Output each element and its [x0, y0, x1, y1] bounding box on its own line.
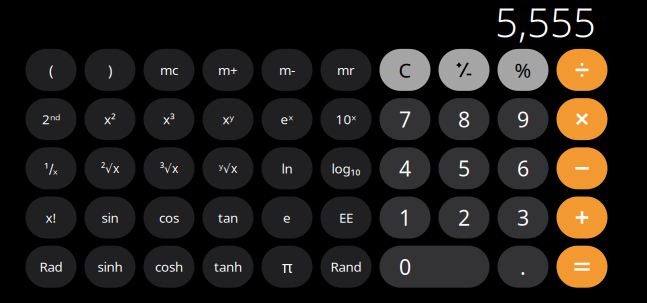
- button[interactable]: m+: [202, 49, 253, 91]
- staticText: mr: [337, 61, 355, 79]
- button[interactable]: sin: [84, 196, 135, 238]
- button[interactable]: EE: [320, 196, 371, 238]
- button[interactable]: Pi: [261, 246, 312, 288]
- button[interactable]: Rad: [25, 246, 76, 288]
- staticText: tan: [218, 209, 238, 226]
- staticText: Rad: [39, 258, 62, 275]
- staticText: 6: [517, 154, 529, 182]
- button[interactable]: Close parenthesis: [84, 49, 135, 91]
- staticText: 5: [458, 154, 470, 182]
- button[interactable]: e to the x: [261, 98, 312, 140]
- button[interactable]: 4: [379, 147, 430, 189]
- button[interactable]: x cubed: [143, 98, 194, 140]
- button[interactable]: 5: [438, 147, 489, 189]
- staticText: ʸ√x: [219, 160, 237, 176]
- staticText: sinh: [97, 258, 122, 275]
- button[interactable]: Plus minus: [438, 49, 489, 91]
- button[interactable]: sinh: [84, 246, 135, 288]
- button[interactable]: Decimal point: [497, 246, 548, 288]
- button[interactable]: tan: [202, 196, 253, 238]
- button[interactable]: Square root: [84, 147, 135, 189]
- staticText: 4: [399, 154, 411, 182]
- staticText: 7: [399, 105, 411, 133]
- button[interactable]: 8: [438, 98, 489, 140]
- button[interactable]: cos: [143, 196, 194, 238]
- button[interactable]: Cube root: [143, 147, 194, 189]
- staticText: 9: [517, 105, 529, 133]
- staticText: C: [398, 57, 411, 83]
- staticText: 2: [458, 203, 470, 232]
- button[interactable]: m-: [261, 49, 312, 91]
- staticText: cos: [159, 209, 179, 226]
- button[interactable]: 2: [438, 196, 489, 238]
- button[interactable]: 0: [379, 246, 489, 288]
- button[interactable]: x squared: [84, 98, 135, 140]
- button[interactable]: Rand: [320, 246, 371, 288]
- button[interactable]: mc: [143, 49, 194, 91]
- button[interactable]: 6: [497, 147, 548, 189]
- staticText: (: [49, 60, 53, 80]
- button[interactable]: Clear: [379, 49, 430, 91]
- button[interactable]: Percent: [497, 49, 548, 91]
- button[interactable]: Divide: [556, 49, 607, 91]
- button[interactable]: mr: [320, 49, 371, 91]
- button[interactable]: Open parenthesis: [25, 49, 76, 91]
- staticText: ): [108, 60, 112, 80]
- staticText: x!: [45, 209, 56, 226]
- staticText: xʸ: [222, 110, 233, 128]
- staticText: eˣ: [280, 110, 293, 128]
- staticText: 0: [399, 252, 411, 281]
- staticText: m-: [279, 61, 295, 79]
- button[interactable]: Plus: [556, 196, 607, 238]
- staticText: cosh: [155, 258, 183, 275]
- button[interactable]: 9: [497, 98, 548, 140]
- staticText: %: [514, 57, 531, 83]
- button[interactable]: x to the y: [202, 98, 253, 140]
- button[interactable]: Equals: [556, 246, 607, 288]
- staticText: 5,555: [495, 0, 596, 48]
- staticText: π: [282, 256, 292, 277]
- staticText: m+: [218, 61, 238, 79]
- staticText: mc: [160, 61, 178, 79]
- button[interactable]: One over x: [25, 147, 76, 189]
- staticText: log₁₀: [331, 159, 360, 177]
- staticText: 1: [399, 203, 411, 232]
- staticText: ln: [281, 159, 292, 177]
- button[interactable]: ten to the x: [320, 98, 371, 140]
- button[interactable]: tanh: [202, 246, 253, 288]
- button[interactable]: 7: [379, 98, 430, 140]
- button[interactable]: 1: [379, 196, 430, 238]
- staticText: sin: [101, 209, 118, 226]
- staticText: 8: [458, 105, 470, 133]
- staticText: ³√x: [160, 160, 178, 176]
- staticText: ²√x: [101, 160, 119, 176]
- button[interactable]: log base ten: [320, 147, 371, 189]
- button[interactable]: cosh: [143, 246, 194, 288]
- staticText: ¹∕ₓ: [44, 159, 58, 177]
- button[interactable]: x factorial: [25, 196, 76, 238]
- button[interactable]: ln: [261, 147, 312, 189]
- staticText: 2ⁿᵈ: [42, 110, 60, 128]
- button[interactable]: Second: [25, 98, 76, 140]
- staticText: x³: [163, 110, 175, 128]
- staticText: EE: [339, 209, 353, 226]
- staticText: 3: [517, 203, 529, 232]
- staticText: x²: [104, 110, 116, 128]
- staticText: .: [520, 252, 526, 281]
- button[interactable]: y root of x: [202, 147, 253, 189]
- button[interactable]: e: [261, 196, 312, 238]
- staticText: Rand: [330, 258, 361, 275]
- staticText: 10ˣ: [335, 110, 356, 128]
- button[interactable]: 3: [497, 196, 548, 238]
- button[interactable]: Multiply: [556, 98, 607, 140]
- staticText: e: [283, 209, 291, 226]
- staticText: tanh: [214, 258, 242, 275]
- button[interactable]: Minus: [556, 147, 607, 189]
